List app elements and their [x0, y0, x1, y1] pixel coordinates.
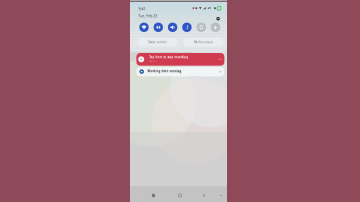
button[interactable]: Auto rotate: [196, 23, 206, 32]
staticText: Working time running: [148, 69, 182, 73]
button[interactable]: Bluetooth: [182, 23, 192, 32]
staticText: 32%: [207, 6, 211, 10]
staticText: 9:41: [139, 7, 146, 11]
button[interactable]: Mobile data: [154, 23, 163, 32]
staticText: 00:16: [149, 59, 154, 63]
button[interactable]: Back: [202, 194, 205, 197]
staticText: Device control: [148, 40, 167, 44]
button[interactable]: Settings: [216, 17, 220, 21]
button[interactable]: Media output: [183, 38, 224, 46]
button[interactable]: Working time running: [136, 67, 224, 76]
button[interactable]: Home: [178, 194, 181, 197]
staticText: Tue, Feb 23: [138, 14, 157, 18]
button[interactable]: Sound: [168, 23, 177, 32]
button[interactable]: Tap here to stop recording: [136, 53, 224, 66]
staticText: Media output: [194, 40, 213, 44]
staticText: now: [182, 56, 186, 59]
staticText: Tap here to stop recording: [149, 55, 188, 59]
button[interactable]: Device control: [137, 38, 178, 46]
staticText: now: [176, 70, 180, 73]
button[interactable]: Airplane mode: [211, 23, 220, 32]
button[interactable]: Wi-Fi: [139, 23, 149, 32]
